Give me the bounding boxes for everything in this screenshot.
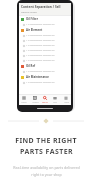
- button[interactable]: Search: [40, 94, 50, 105]
- staticText: FIND THE RIGHT: [15, 136, 77, 146]
- staticText: 1 x 0000000000 0000000 00: [26, 39, 55, 42]
- staticText: 1 x 0000000000 0000000 00: [26, 49, 55, 52]
- staticText: 1 x 0000000000 0000000 00: [26, 23, 55, 26]
- staticText: 1 x 0000000000 0000000 00: [26, 54, 55, 57]
- button[interactable]: Air Maintenance: [19, 74, 71, 80]
- button[interactable]: 1 x 0000000000 0000000 00: [19, 38, 71, 43]
- staticText: Search: [42, 101, 48, 104]
- button[interactable]: Home: [19, 94, 29, 105]
- button[interactable]: 1 x 0000000000 0000000 00: [19, 58, 71, 63]
- staticText: Orders: [32, 101, 39, 104]
- staticText: Home: [21, 101, 27, 104]
- staticText: 1 x 0000000000 0000000 00: [26, 34, 55, 37]
- staticText: Air Element: [26, 28, 43, 32]
- staticText: Content Separation / Sell: [21, 5, 61, 9]
- button[interactable]: Oil Ref: [19, 63, 71, 69]
- staticText: Cart: [53, 101, 57, 104]
- button[interactable]: More: [61, 94, 71, 105]
- staticText: PARTS FASTER: [20, 147, 73, 157]
- button[interactable]: 1 x 0000000000 0000000 00: [19, 48, 71, 53]
- staticText: Real-time availability on parts delivere…: [13, 165, 80, 170]
- button[interactable]: 1 x 0000000000 0000000 00: [19, 22, 71, 27]
- staticText: 1 x 0000000000 0000000 00: [26, 81, 55, 84]
- button[interactable]: Oil Filter: [19, 16, 71, 22]
- button[interactable]: 1 x 0000000000 0000000 00: [19, 43, 71, 48]
- staticText: Air Maintenance: [26, 75, 50, 79]
- staticText: More: [64, 101, 69, 104]
- button[interactable]: Cart: [50, 94, 60, 105]
- button[interactable]: 1 x 0000000000 0000000 00: [19, 33, 71, 38]
- button[interactable]: 1 x 0000000000 0000000 00: [19, 80, 71, 85]
- staticText: Oil Ref: [26, 64, 36, 68]
- staticText: 1 x 0000000000 0000000 00: [26, 44, 55, 47]
- button[interactable]: 1 x 0000000000 0000000 00: [19, 69, 71, 74]
- staticText: Generic Order: [21, 10, 37, 13]
- button[interactable]: Air Element: [19, 27, 71, 33]
- staticText: 1 x 0000000000 0000000 00: [26, 59, 55, 62]
- button[interactable]: 1 x 0000000000 0000000 00: [19, 53, 71, 58]
- staticText: right to your shop: [31, 172, 62, 177]
- button[interactable]: Orders: [30, 94, 40, 105]
- staticText: Oil Filter: [26, 17, 38, 21]
- staticText: 1 x 0000000000 0000000 00: [26, 70, 55, 73]
